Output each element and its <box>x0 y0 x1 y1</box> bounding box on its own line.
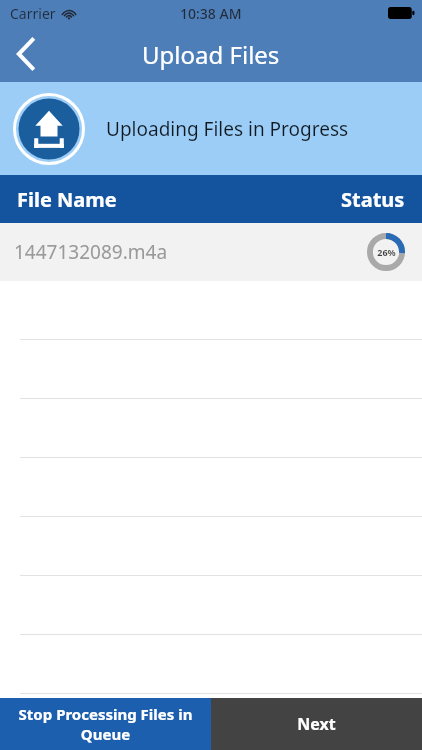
staticText: Status <box>341 186 405 213</box>
staticText: Carrier <box>10 4 56 23</box>
button[interactable]: Next <box>211 698 422 750</box>
staticText: Upload Files <box>142 38 280 71</box>
staticText: Stop Processing Files in Queue <box>0 704 211 744</box>
staticText: 1447132089.m4a <box>14 239 168 265</box>
staticText: Next <box>297 713 336 735</box>
staticText: Uploading Files in Progress <box>106 116 349 142</box>
staticText: File Name <box>17 186 117 213</box>
staticText: 10:38 AM <box>180 4 242 23</box>
button[interactable]: Stop Processing Files in Queue <box>0 698 211 750</box>
staticText: 26% <box>377 246 396 258</box>
button[interactable]: Back <box>0 28 52 80</box>
button[interactable]: 1447132089.m4a <box>0 223 422 281</box>
